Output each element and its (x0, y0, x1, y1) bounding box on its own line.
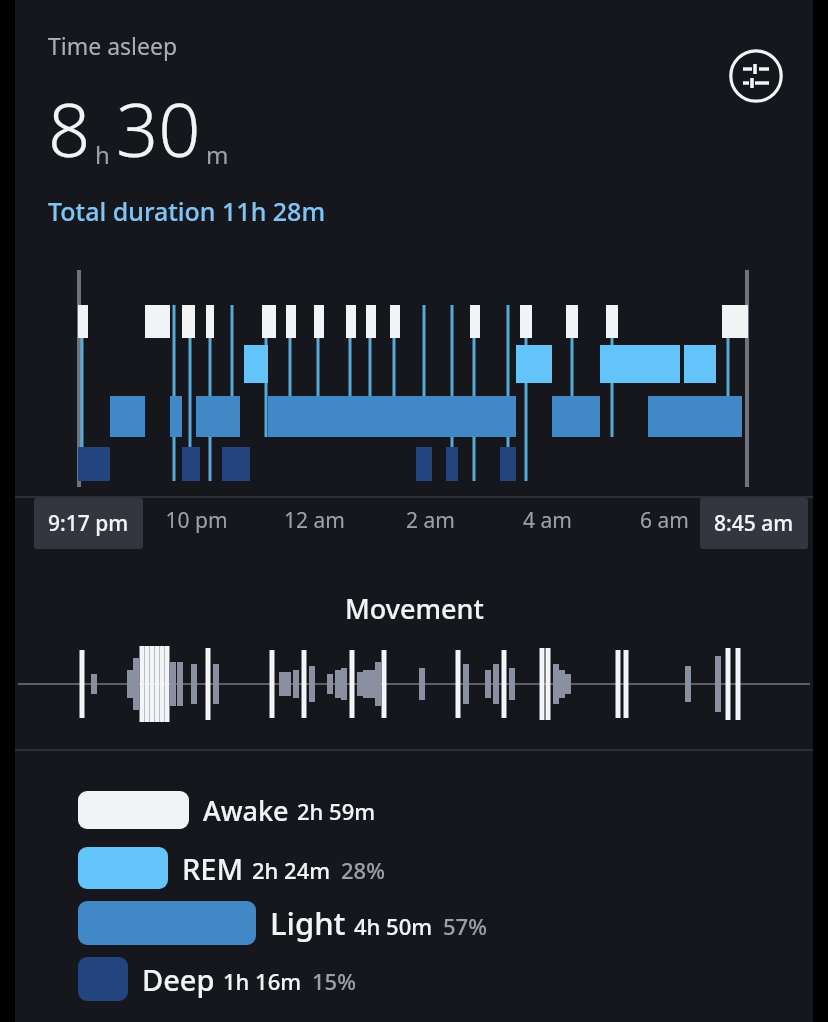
staticText: 30 (116, 78, 201, 179)
staticText: REM (182, 849, 244, 888)
button[interactable]: 9:17 pm (34, 498, 143, 549)
staticText: 2h 59m (297, 796, 376, 826)
button[interactable]: Sleep settings (728, 48, 784, 104)
staticText: 9:17 pm (48, 509, 129, 538)
button[interactable]: Total duration 11h 28m (48, 194, 326, 228)
staticText: 8 (48, 78, 91, 179)
staticText: m (206, 138, 229, 171)
staticText: 15% (312, 966, 356, 996)
staticText: 8 am (757, 506, 806, 535)
staticText: 2h 24m (252, 855, 331, 885)
staticText: Awake (203, 792, 289, 829)
button[interactable]: REM (78, 842, 385, 894)
staticText: 1h 16m (223, 966, 302, 996)
staticText: 12 am (284, 506, 345, 535)
staticText: 4h 50m (354, 911, 433, 941)
staticText: Time asleep (48, 30, 178, 61)
staticText: Light (270, 902, 346, 944)
staticText: 4 am (523, 506, 572, 535)
staticText: 6 am (640, 506, 689, 535)
staticText: Movement (345, 590, 484, 627)
button[interactable]: Light (78, 896, 487, 950)
staticText: h (95, 138, 110, 171)
button[interactable]: Deep (78, 952, 356, 1006)
button[interactable]: Awake (78, 786, 376, 834)
staticText: 10 pm (165, 506, 228, 535)
staticText: 57% (443, 911, 487, 941)
staticText: 2 am (406, 506, 455, 535)
button[interactable]: 8:45 am (700, 498, 808, 549)
staticText: Deep (142, 960, 215, 999)
staticText: 28% (341, 855, 385, 885)
staticText: 8:45 am (714, 509, 794, 538)
